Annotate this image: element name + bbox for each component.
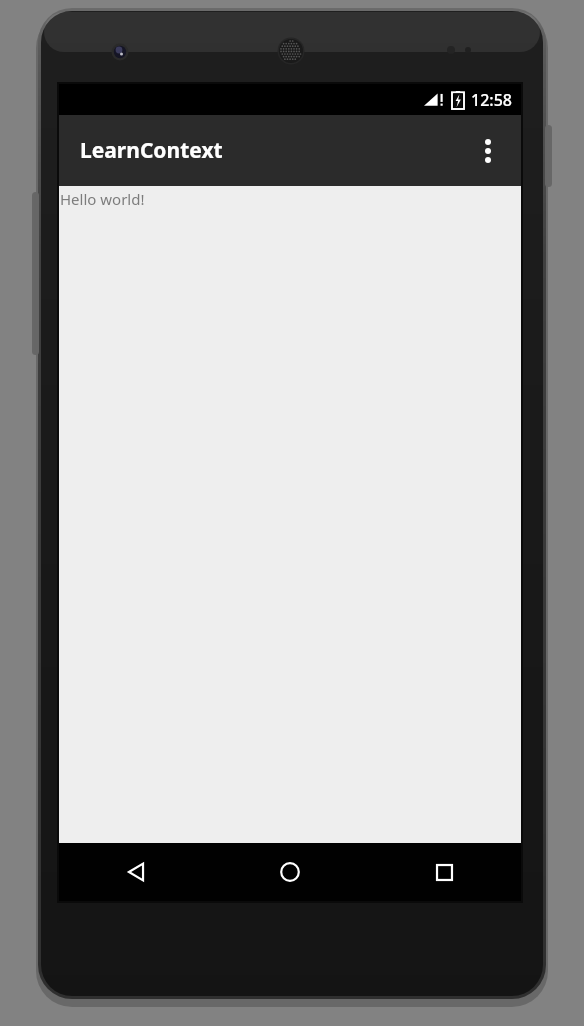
button[interactable]: Home — [213, 843, 367, 901]
staticText: Hello world! — [60, 189, 145, 209]
button[interactable]: Back — [59, 843, 213, 901]
button[interactable]: Recent apps — [367, 843, 521, 901]
staticText: LearnContext — [80, 136, 223, 165]
staticText: 12:58 — [471, 89, 512, 111]
button[interactable]: More options — [464, 127, 512, 175]
